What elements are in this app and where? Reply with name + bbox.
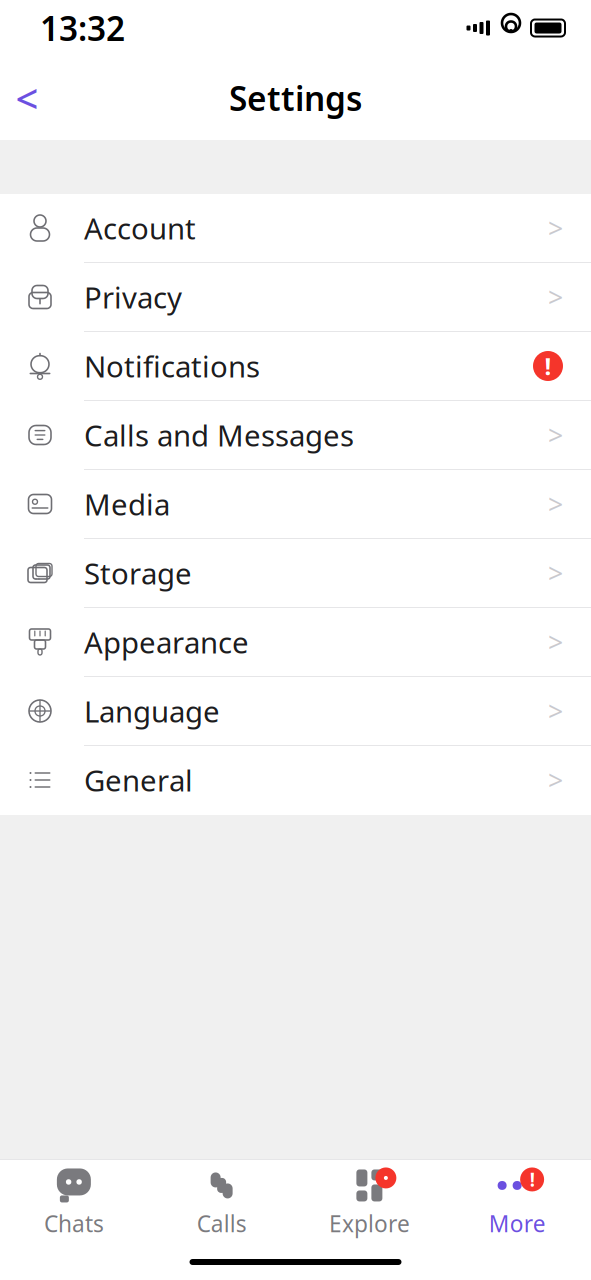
staticText: Explore xyxy=(329,1208,410,1238)
button[interactable]: Calls and Messages xyxy=(0,401,591,470)
staticText: > xyxy=(548,486,563,522)
staticText: Privacy xyxy=(84,277,182,316)
staticText: More xyxy=(489,1208,546,1238)
button[interactable]: Calls xyxy=(148,1157,296,1246)
staticText: Chats xyxy=(44,1208,104,1238)
staticText: > xyxy=(548,693,563,729)
staticText: < xyxy=(15,71,38,124)
staticText: Storage xyxy=(84,553,192,592)
button[interactable]: Language xyxy=(0,677,591,746)
staticText: General xyxy=(84,760,193,799)
staticText: Calls xyxy=(197,1208,247,1238)
staticText: Account xyxy=(84,208,196,247)
button[interactable]: Notifications xyxy=(0,332,591,401)
button[interactable]: General xyxy=(0,746,591,815)
staticText: Notifications xyxy=(84,346,260,385)
staticText: > xyxy=(548,762,563,798)
button[interactable]: Back xyxy=(0,71,54,125)
button[interactable]: Account xyxy=(0,194,591,263)
staticText: > xyxy=(548,624,563,660)
button[interactable]: Storage xyxy=(0,539,591,608)
staticText: 13:32 xyxy=(40,6,125,50)
staticText: > xyxy=(548,417,563,453)
staticText: Media xyxy=(84,484,170,523)
staticText: Language xyxy=(84,691,220,730)
button[interactable]: Privacy xyxy=(0,263,591,332)
staticText: Appearance xyxy=(84,622,249,661)
button[interactable]: Chats xyxy=(0,1157,148,1246)
staticText: > xyxy=(548,210,563,246)
staticText: > xyxy=(548,555,563,591)
staticText: ! xyxy=(544,350,551,382)
button[interactable]: ! xyxy=(443,1157,591,1246)
staticText: > xyxy=(548,279,563,315)
staticText: Settings xyxy=(229,76,362,120)
staticText: Calls and Messages xyxy=(84,415,354,454)
button[interactable]: Appearance xyxy=(0,608,591,677)
button[interactable]: Media xyxy=(0,470,591,539)
staticText: ! xyxy=(530,1167,535,1192)
button[interactable]: Explore xyxy=(295,1157,443,1246)
